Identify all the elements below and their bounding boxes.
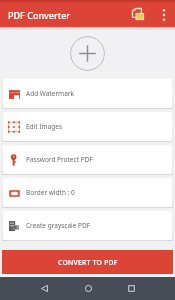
button[interactable]: Add file bbox=[70, 36, 105, 71]
button[interactable]: Home bbox=[77, 277, 99, 299]
button[interactable]: Create grayscale PDF bbox=[3, 211, 172, 240]
staticText: Border width : 0 bbox=[26, 188, 75, 197]
button[interactable]: Border width : 0 bbox=[3, 178, 172, 207]
staticText: Create grayscale PDF bbox=[26, 221, 91, 230]
button[interactable]: Edit Images bbox=[3, 112, 172, 141]
button[interactable]: Password Protect PDF bbox=[3, 145, 172, 174]
button[interactable]: CONVERT TO PDF bbox=[2, 250, 173, 274]
staticText: Password Protect PDF bbox=[26, 155, 93, 164]
staticText: PDF Converter bbox=[8, 9, 131, 21]
button[interactable]: More options bbox=[153, 4, 175, 26]
button[interactable]: Back bbox=[33, 277, 55, 299]
button[interactable]: Recent apps bbox=[120, 277, 142, 299]
button[interactable]: Add Watermark bbox=[3, 79, 172, 108]
button[interactable]: Open PDF file bbox=[127, 3, 149, 25]
staticText: Edit Images bbox=[26, 122, 63, 131]
staticText: Add Watermark bbox=[26, 89, 74, 98]
staticText: CONVERT TO PDF bbox=[58, 258, 118, 267]
